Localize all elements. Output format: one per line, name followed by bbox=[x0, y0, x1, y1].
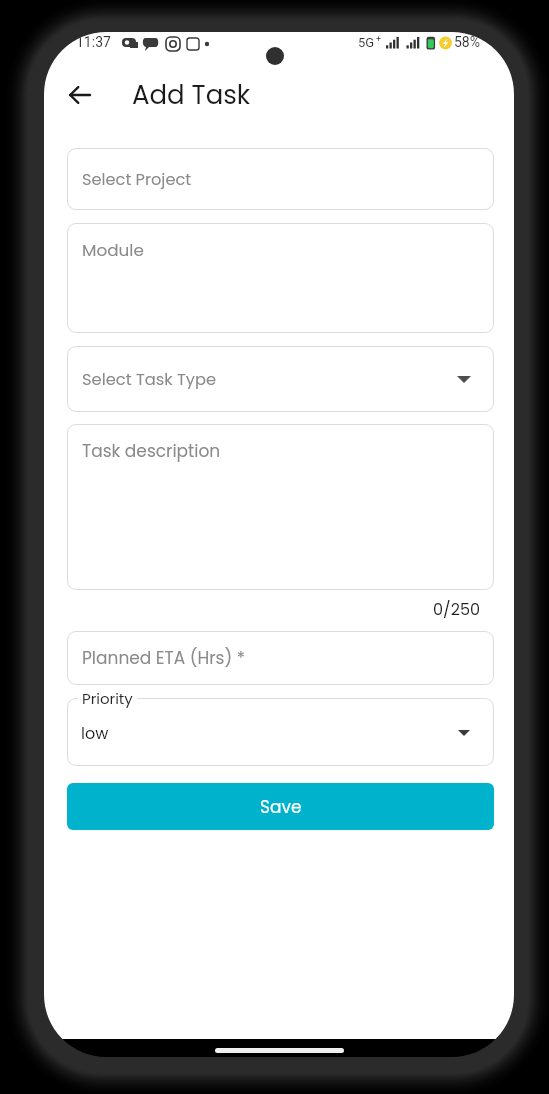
staticText: Planned ETA (Hrs) * bbox=[82, 646, 245, 670]
staticText: Save bbox=[260, 795, 302, 819]
staticText: Select Project bbox=[82, 168, 192, 191]
staticText: Select Task Type bbox=[82, 368, 217, 391]
button[interactable]: Back bbox=[57, 73, 101, 117]
staticText: Module bbox=[82, 238, 144, 262]
button[interactable]: low bbox=[67, 698, 494, 766]
button[interactable]: Select Project bbox=[67, 148, 494, 210]
staticText: + bbox=[376, 34, 382, 45]
staticText: low bbox=[81, 722, 109, 744]
staticText: Priority bbox=[82, 688, 133, 709]
button[interactable]: Task description bbox=[67, 424, 494, 590]
staticText: 11:37 bbox=[76, 34, 111, 50]
staticText: Task description bbox=[82, 439, 221, 463]
button[interactable]: Select Task Type bbox=[67, 346, 494, 412]
button[interactable]: Save bbox=[67, 783, 494, 830]
button[interactable]: Planned ETA (Hrs) * bbox=[67, 631, 494, 685]
staticText: Add Task bbox=[132, 77, 251, 113]
staticText: 58% bbox=[454, 34, 480, 50]
button[interactable]: Module bbox=[67, 223, 494, 333]
staticText: 0/250 bbox=[67, 598, 480, 620]
staticText: 5G bbox=[358, 35, 375, 50]
